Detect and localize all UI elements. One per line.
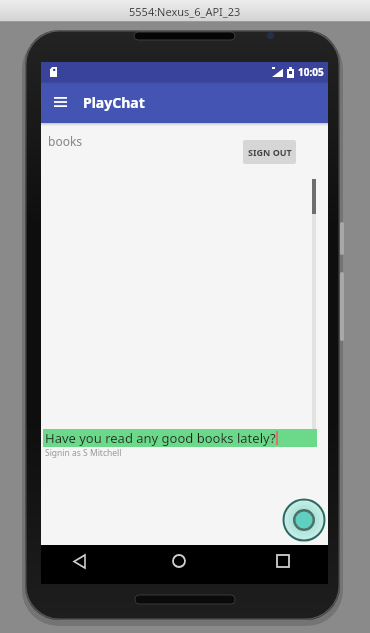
staticText: books — [48, 133, 83, 149]
staticText: Have you read any good books lately? — [45, 429, 276, 447]
button[interactable]: Have you read any good books lately? — [43, 429, 317, 447]
staticText: Signin as S Mitchell — [45, 447, 122, 459]
staticText: 5554:Nexus_6_API_23 — [129, 4, 241, 19]
staticText: SIGN OUT — [248, 146, 292, 158]
button[interactable] — [269, 547, 297, 575]
button[interactable]: SIGN OUT — [243, 140, 296, 164]
button[interactable] — [47, 94, 73, 110]
staticText: PlayChat — [83, 93, 145, 112]
button[interactable] — [165, 547, 193, 575]
button[interactable] — [65, 547, 93, 575]
staticText: 10:05 — [298, 65, 324, 79]
button[interactable] — [283, 499, 325, 541]
